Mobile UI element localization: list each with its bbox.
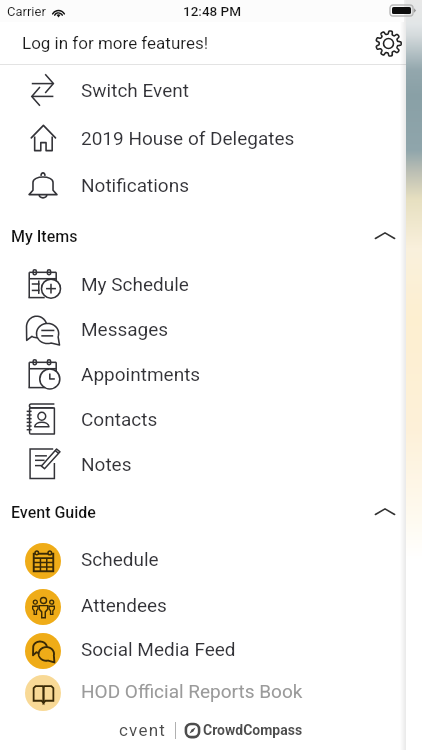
staticText: Contacts <box>81 408 158 430</box>
staticText: cvent <box>119 720 166 740</box>
staticText: Notifications <box>81 174 190 196</box>
staticText: Notes <box>81 453 132 475</box>
staticText: HOD Official Reports Book <box>81 680 303 702</box>
button[interactable]: My Schedule <box>0 261 422 306</box>
staticText: Attendees <box>81 594 167 616</box>
staticText: CrowdCompass <box>203 722 303 738</box>
staticText: My Schedule <box>81 273 189 295</box>
staticText: Appointments <box>81 363 201 385</box>
button[interactable]: Attendees <box>0 583 422 627</box>
staticText: 2019 House of Delegates <box>81 127 295 149</box>
button[interactable]: Switch Event <box>0 67 422 112</box>
button[interactable]: My Items <box>0 215 422 257</box>
button[interactable]: Contacts <box>0 396 422 441</box>
staticText: Social Media Feed <box>81 638 236 660</box>
button[interactable]: Notifications <box>0 162 422 207</box>
button[interactable]: Settings <box>370 25 406 61</box>
button[interactable]: Event Guide <box>0 491 422 533</box>
button[interactable]: Appointments <box>0 351 422 396</box>
staticText: Event Guide <box>11 503 96 522</box>
button[interactable]: HOD Official Reports Book <box>0 669 422 713</box>
staticText: 12:48 PM <box>183 3 242 19</box>
button[interactable]: Notes <box>0 441 422 486</box>
button[interactable]: Schedule <box>0 537 422 581</box>
staticText: Messages <box>81 318 169 340</box>
staticText: Switch Event <box>81 79 189 101</box>
button[interactable]: Messages <box>0 306 422 351</box>
button[interactable]: Social Media Feed <box>0 627 422 671</box>
staticText: My Items <box>11 227 78 246</box>
button[interactable]: 2019 House of Delegates <box>0 115 422 160</box>
staticText: Log in for more features! <box>22 33 209 53</box>
staticText: Carrier <box>7 4 46 19</box>
staticText: Schedule <box>81 548 159 570</box>
